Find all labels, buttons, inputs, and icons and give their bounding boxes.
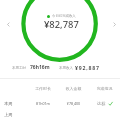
button[interactable]: Previous period <box>1 17 15 31</box>
staticText: 今日已完成收入 <box>52 14 76 18</box>
staticText: ¥82,787 <box>44 18 79 31</box>
staticText: 完成情况 <box>89 86 120 91</box>
staticText: 达标 <box>97 101 106 106</box>
staticText: 76h16m <box>30 64 50 71</box>
staticText: 81h01m <box>28 101 58 106</box>
staticText: 本周收入 <box>59 66 73 70</box>
staticText: 本周 <box>4 101 28 106</box>
button[interactable]: 本周 <box>0 99 120 108</box>
staticText: ¥92,887 <box>75 64 100 71</box>
button[interactable]: Next period <box>107 17 120 31</box>
staticText: 上周 <box>4 112 28 117</box>
staticText: ¥78,400 <box>58 101 89 106</box>
staticText: 工作时长 <box>28 86 58 91</box>
button[interactable]: 上周 <box>0 110 120 119</box>
staticText: 收入金额 <box>58 86 89 91</box>
staticText: 本周工时 <box>12 66 26 70</box>
